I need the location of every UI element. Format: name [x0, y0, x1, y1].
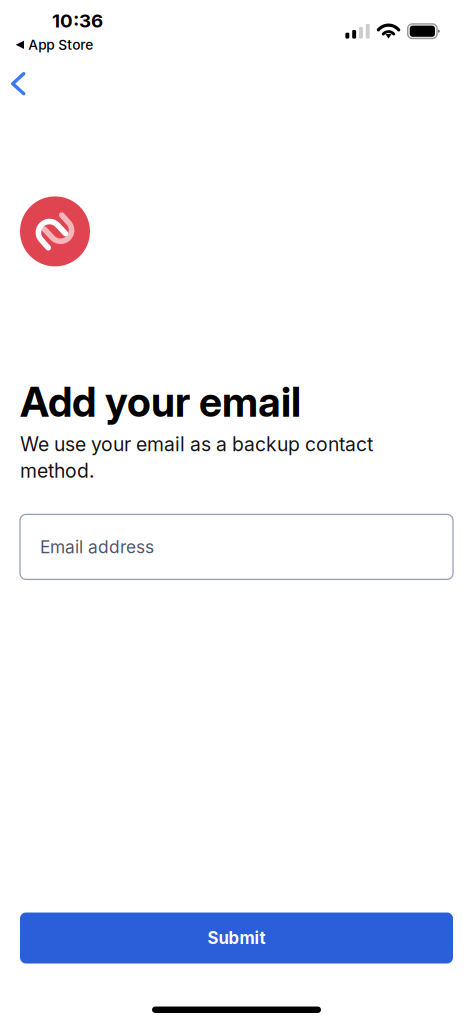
- staticText: Email address: [40, 536, 154, 557]
- staticText: 10:36: [52, 9, 103, 32]
- staticText: Submit: [207, 928, 265, 948]
- button[interactable]: Submit: [20, 912, 453, 963]
- staticText: App Store: [28, 36, 93, 53]
- button[interactable]: Email address: [20, 514, 453, 579]
- staticText: We use your email as a backup contact me…: [20, 433, 373, 482]
- staticText: Add your email: [20, 377, 301, 427]
- button[interactable]: Back: [0, 56, 43, 99]
